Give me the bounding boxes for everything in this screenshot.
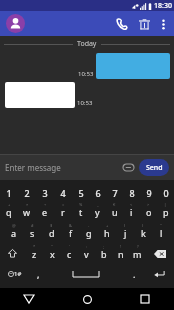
staticText: w	[23, 206, 31, 218]
staticText: 9	[146, 187, 152, 199]
button[interactable]: v	[78, 243, 95, 264]
staticText: f	[69, 227, 73, 239]
staticText: )	[142, 223, 144, 228]
button[interactable]: 9	[140, 185, 157, 201]
staticText: n	[118, 248, 124, 260]
button[interactable]: Recents	[116, 288, 174, 310]
button[interactable]: e	[36, 201, 54, 222]
staticText: €	[113, 202, 116, 207]
button[interactable]: y	[89, 201, 106, 222]
button[interactable]: Symbols and emoji	[0, 264, 29, 284]
staticText: m	[133, 248, 142, 260]
staticText: *	[33, 244, 36, 249]
button[interactable]: u	[106, 201, 123, 222]
staticText: 4	[60, 187, 66, 199]
staticText: _	[97, 202, 99, 207]
staticText: x	[50, 248, 55, 260]
staticText: +	[8, 202, 11, 207]
button[interactable]: r	[54, 201, 72, 222]
staticText: 5	[78, 187, 84, 199]
button[interactable]: m	[129, 243, 146, 264]
button[interactable]: l	[152, 222, 170, 243]
button[interactable]: Send	[139, 159, 169, 176]
button[interactable]: i	[123, 201, 140, 222]
button[interactable]: n	[112, 243, 129, 264]
button[interactable]: Backspace	[146, 243, 174, 264]
button[interactable]: ,	[29, 264, 47, 284]
staticText: 18:30	[154, 1, 172, 11]
button[interactable]: 2	[18, 185, 36, 201]
button[interactable]: s	[23, 222, 42, 243]
button[interactable]: b	[95, 243, 112, 264]
staticText: :	[86, 244, 88, 249]
button[interactable]: Delete	[133, 13, 155, 35]
button[interactable]: Received message	[5, 82, 75, 108]
staticText: j	[124, 227, 127, 239]
staticText: 10:53	[78, 70, 94, 78]
button[interactable]: o	[140, 201, 157, 222]
button[interactable]: Sent message	[96, 53, 170, 79]
button[interactable]: 1	[0, 185, 18, 201]
staticText: o	[146, 206, 152, 218]
staticText: $	[50, 223, 53, 228]
staticText: -	[88, 223, 90, 228]
staticText: %	[79, 202, 83, 207]
button[interactable]: Space	[47, 264, 125, 284]
staticText: s	[30, 227, 35, 239]
button[interactable]: h	[98, 222, 116, 243]
staticText: .	[133, 268, 136, 280]
button[interactable]: f	[61, 222, 80, 243]
staticText: +	[106, 223, 109, 228]
staticText: 2	[24, 187, 30, 199]
button[interactable]: Back	[0, 288, 58, 310]
button[interactable]: Enter	[144, 264, 174, 284]
button[interactable]: c	[61, 243, 78, 264]
button[interactable]: Enter message	[5, 162, 120, 173]
button[interactable]: Shift	[0, 243, 25, 264]
staticText: "	[160, 223, 162, 228]
staticText: 7	[112, 187, 118, 199]
button[interactable]: 3	[36, 185, 54, 201]
staticText: !	[120, 244, 122, 249]
button[interactable]: q	[0, 201, 18, 222]
button[interactable]: 8	[123, 185, 140, 201]
button[interactable]: Attach	[120, 159, 136, 175]
button[interactable]: 5	[72, 185, 89, 201]
staticText: b	[101, 248, 107, 260]
button[interactable]: p	[157, 201, 174, 222]
button[interactable]: x	[43, 243, 61, 264]
button[interactable]: Home	[58, 288, 116, 310]
staticText: <	[130, 202, 133, 207]
button[interactable]: j	[116, 222, 134, 243]
button[interactable]: Call	[111, 13, 133, 35]
button[interactable]: 7	[106, 185, 123, 201]
button[interactable]: d	[42, 222, 61, 243]
button[interactable]: k	[134, 222, 152, 243]
button[interactable]: 6	[89, 185, 106, 201]
staticText: u	[112, 206, 118, 218]
staticText: ×	[26, 202, 29, 207]
staticText: k	[141, 227, 146, 239]
staticText: =	[62, 202, 65, 207]
button[interactable]: 4	[54, 185, 72, 201]
staticText: 1	[6, 187, 12, 199]
button[interactable]: a	[4, 222, 23, 243]
button[interactable]: w	[18, 201, 36, 222]
staticText: t	[79, 206, 83, 218]
button[interactable]: 0	[157, 185, 174, 201]
staticText: y	[95, 206, 100, 218]
staticText: 10:53	[77, 99, 93, 107]
staticText: v	[84, 248, 89, 260]
button[interactable]: z	[25, 243, 43, 264]
staticText: >	[147, 202, 150, 207]
button[interactable]: .	[125, 264, 144, 284]
staticText: h	[104, 227, 110, 239]
button[interactable]: g	[80, 222, 98, 243]
staticText: i	[130, 206, 133, 218]
staticText: |	[164, 202, 167, 207]
button[interactable]: Contact avatar	[6, 14, 25, 33]
staticText: '	[69, 244, 70, 249]
staticText: l	[160, 227, 163, 239]
button[interactable]: More options	[155, 16, 171, 32]
button[interactable]: t	[72, 201, 89, 222]
